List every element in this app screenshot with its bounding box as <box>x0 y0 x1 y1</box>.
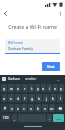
button[interactable]: smelter <box>24 77 38 81</box>
staticText: x <box>17 106 19 111</box>
button[interactable]: Wi-Fi name <box>5 39 60 53</box>
staticText: g <box>31 96 34 101</box>
button[interactable]: q <box>1 84 7 92</box>
button[interactable]: s <box>8 94 14 102</box>
button[interactable]: y <box>35 84 40 92</box>
button[interactable]: m <box>49 104 55 112</box>
staticText: j <box>46 96 47 101</box>
staticText: t <box>31 86 33 91</box>
button[interactable]: b <box>35 104 41 112</box>
staticText: m <box>50 106 54 111</box>
staticText: b <box>37 106 40 111</box>
button[interactable]: p <box>59 84 64 92</box>
button[interactable]: u <box>41 84 46 92</box>
staticText: n <box>44 106 47 111</box>
button[interactable]: Back <box>0 8 10 18</box>
staticText: Dodson Family <box>8 46 33 51</box>
button[interactable]: ?123 <box>1 114 11 122</box>
button[interactable]: e <box>15 84 21 92</box>
button[interactable]: f <box>22 94 28 102</box>
button[interactable]: r <box>22 84 28 92</box>
button[interactable]: k <box>50 94 56 102</box>
button[interactable]: l <box>57 94 63 102</box>
staticText: v <box>30 106 32 111</box>
button[interactable]: . <box>47 114 52 122</box>
staticText: Wi-Fi name <box>8 41 24 45</box>
staticText: , <box>14 116 15 121</box>
button[interactable]: Shift <box>1 104 8 112</box>
staticText: e <box>17 86 20 91</box>
button[interactable]: z <box>9 104 14 112</box>
staticText: smelter <box>25 77 37 81</box>
staticText: d <box>17 96 20 101</box>
button[interactable]: w <box>8 84 14 92</box>
button[interactable]: d <box>15 94 21 102</box>
button[interactable]: Backspace <box>56 104 64 112</box>
button[interactable]: j <box>43 94 49 102</box>
staticText: u <box>42 86 45 91</box>
staticText: Next <box>47 64 55 69</box>
button[interactable]: Expand suggestions <box>57 78 60 81</box>
button[interactable]: g <box>29 94 35 102</box>
staticText: r <box>24 86 26 91</box>
button[interactable]: c <box>21 104 27 112</box>
staticText: l <box>60 96 61 101</box>
staticText: ?123 <box>3 116 9 120</box>
button[interactable]: a <box>2 94 7 102</box>
staticText: a <box>3 96 6 101</box>
staticText: k <box>52 96 54 101</box>
button[interactable]: More options <box>55 8 65 18</box>
button[interactable]: Enter <box>53 114 64 122</box>
staticText: p <box>60 86 63 91</box>
staticText: h <box>38 96 41 101</box>
button[interactable]: v <box>28 104 34 112</box>
staticText: q <box>3 86 6 91</box>
staticText: y <box>37 86 39 91</box>
button[interactable]: o <box>53 84 58 92</box>
staticText: Dodson <box>8 77 20 81</box>
staticText: i <box>49 86 50 91</box>
button[interactable]: Dodson <box>7 77 21 81</box>
button[interactable]: x <box>15 104 20 112</box>
staticText: c <box>23 106 25 111</box>
button[interactable]: n <box>42 104 48 112</box>
button[interactable]: h <box>36 94 42 102</box>
button[interactable]: , <box>12 114 17 122</box>
button[interactable]: i <box>47 84 52 92</box>
button[interactable]: t <box>29 84 34 92</box>
staticText: f <box>24 96 26 101</box>
staticText: next <box>56 117 61 120</box>
staticText: z <box>11 106 13 111</box>
staticText: . <box>49 116 50 121</box>
staticText: ⌄ <box>57 78 60 81</box>
button[interactable]: Next <box>42 62 60 71</box>
staticText: o <box>54 86 57 91</box>
staticText: w <box>10 86 13 91</box>
staticText: s <box>10 96 12 101</box>
staticText: Create a Wi-Fi name <box>8 23 57 30</box>
